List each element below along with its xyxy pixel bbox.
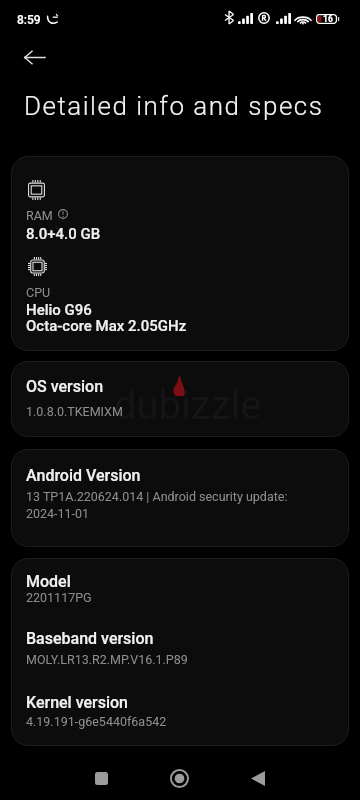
button[interactable]: Android version	[11, 449, 349, 547]
staticText: Kernel version	[26, 693, 129, 712]
other: Missed call	[47, 13, 58, 24]
staticText: MOLY.LR13.R2.MP.V16.1.P89	[26, 652, 188, 667]
button[interactable]: Recents	[77, 754, 125, 800]
staticText: 8:59	[17, 13, 41, 27]
staticText: 16	[323, 14, 333, 24]
button[interactable]: Back	[234, 754, 282, 800]
staticText: OS version	[26, 377, 104, 396]
staticText: Android Version	[26, 466, 141, 485]
staticText: Helio G96	[26, 301, 92, 319]
button[interactable]: Back	[14, 37, 54, 77]
staticText: dubizzle	[114, 382, 262, 429]
staticText: 13 TP1A.220624.014 | Android security up…	[26, 489, 288, 504]
staticText: RAM	[26, 208, 53, 223]
staticText: 8.0+4.0 GB	[26, 225, 101, 243]
staticText: 2024-11-01	[26, 506, 90, 521]
button[interactable]: RAM and CPU	[11, 156, 349, 351]
staticText: Baseband version	[26, 629, 154, 648]
staticText: CPU	[26, 285, 51, 300]
button[interactable]: OS version	[11, 361, 349, 437]
button[interactable]: Home	[155, 754, 203, 800]
staticText: 2201117PG	[26, 590, 92, 605]
staticText: Detailed info and specs	[24, 91, 324, 121]
staticText: Model	[26, 572, 71, 591]
staticText: 4.19.191-g6e5440f6a542	[26, 714, 167, 729]
staticText: 1.0.8.0.TKEMIXM	[26, 404, 123, 419]
staticText: Octa-core Max 2.05GHz	[26, 317, 187, 335]
button[interactable]: Model, baseband and kernel	[11, 558, 349, 746]
